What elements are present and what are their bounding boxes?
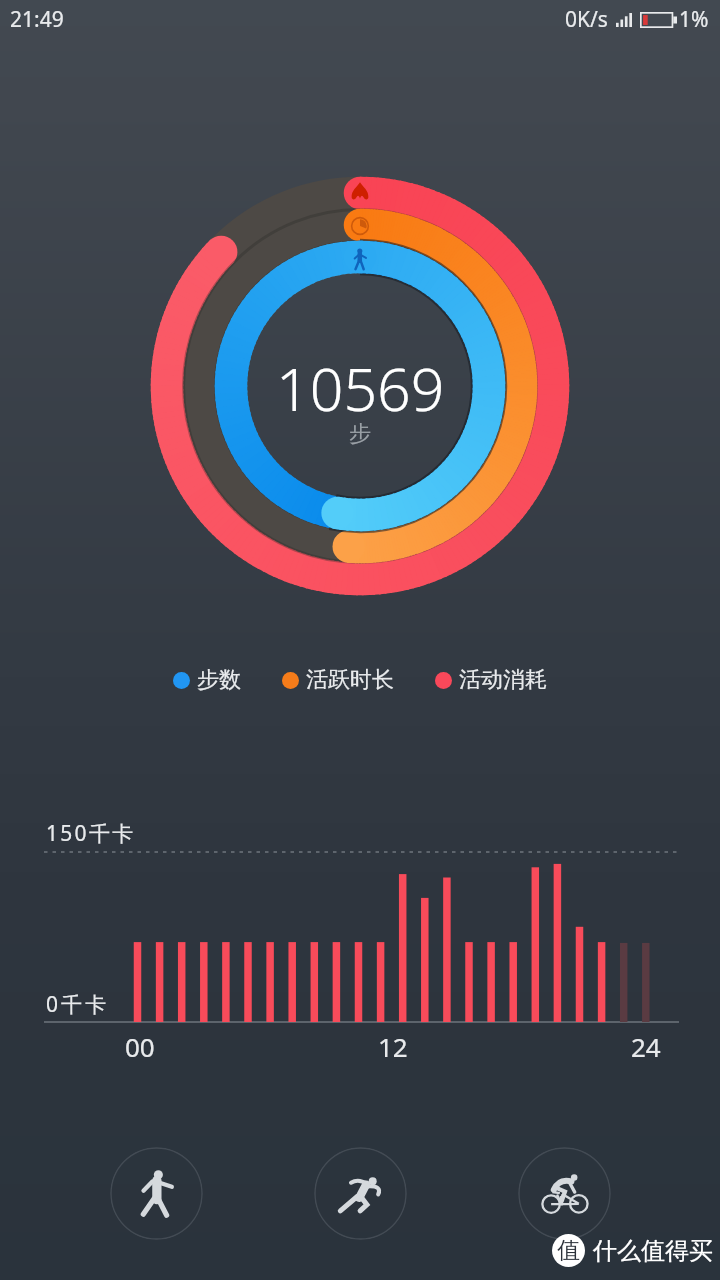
staticText: 00 — [125, 1029, 155, 1064]
staticText: 24 — [631, 1029, 661, 1064]
staticText: 活跃时长 — [306, 666, 394, 694]
staticText: 150千卡 — [46, 819, 136, 848]
staticText: 活动消耗 — [459, 666, 547, 694]
button[interactable]: 活跃时长 — [282, 666, 394, 694]
button[interactable]: Cycling — [518, 1147, 611, 1240]
staticText: 21:49 — [10, 5, 64, 34]
staticText: 10569 — [276, 348, 445, 428]
staticText: 1% — [679, 5, 709, 34]
staticText: 步 — [349, 420, 371, 448]
button[interactable]: 步数 — [173, 666, 241, 694]
staticText: 值 — [557, 1236, 580, 1265]
staticText: 0千卡 — [46, 990, 110, 1019]
staticText: 12 — [378, 1029, 408, 1064]
button[interactable]: Running — [314, 1147, 407, 1240]
staticText: 什么值得买 — [593, 1236, 713, 1266]
button[interactable]: 活动消耗 — [435, 666, 547, 694]
staticText: 步数 — [197, 666, 241, 694]
staticText: 0K/s — [565, 5, 608, 34]
button[interactable]: Walking — [110, 1147, 203, 1240]
